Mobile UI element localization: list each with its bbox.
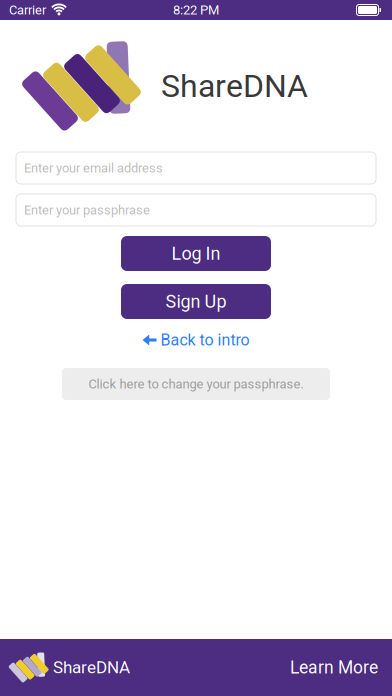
staticText: Click here to change your passphrase. (88, 376, 303, 392)
staticText: Enter your email address (24, 160, 163, 175)
button[interactable]: Learn More (276, 647, 378, 688)
button[interactable]: Back to intro (142, 329, 249, 351)
staticText: Sign Up (165, 291, 226, 312)
button[interactable]: Sign Up (121, 284, 271, 319)
staticText: Back to intro (160, 331, 249, 349)
staticText: ShareDNA (161, 67, 308, 105)
button[interactable]: Click here to change your passphrase. (62, 368, 330, 400)
staticText: ShareDNA (53, 657, 130, 677)
staticText: Enter your passphrase (24, 202, 150, 217)
staticText: Log In (171, 243, 220, 264)
staticText: Carrier (9, 2, 46, 17)
button[interactable]: Log In (121, 236, 271, 271)
staticText: Learn More (290, 657, 378, 678)
staticText: 8:22 PM (173, 2, 219, 18)
